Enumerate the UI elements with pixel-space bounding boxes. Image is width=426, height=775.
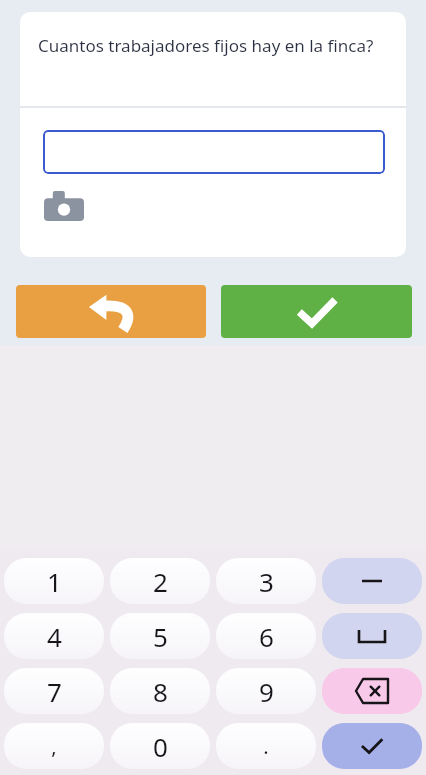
staticText: . xyxy=(263,733,269,760)
button[interactable]: Space xyxy=(322,613,422,659)
button[interactable]: 9 xyxy=(216,668,316,714)
staticText: 2 xyxy=(153,564,168,599)
button[interactable]: Minus xyxy=(322,558,422,604)
staticText: 9 xyxy=(259,674,274,709)
button[interactable]: 6 xyxy=(216,613,316,659)
staticText: 1 xyxy=(47,564,62,599)
staticText: 6 xyxy=(259,619,274,654)
staticText: 7 xyxy=(47,674,62,709)
staticText: 0 xyxy=(153,729,168,764)
button[interactable]: 8 xyxy=(110,668,210,714)
button[interactable]: Back xyxy=(16,285,206,338)
staticText: 5 xyxy=(153,619,168,654)
button[interactable]: 1 xyxy=(4,558,104,604)
staticText: Cuantos trabajadores fijos hay en la fin… xyxy=(38,34,374,57)
button[interactable]: 0 xyxy=(110,723,210,769)
button[interactable]: 5 xyxy=(110,613,210,659)
button[interactable]: . xyxy=(216,723,316,769)
button[interactable]: 2 xyxy=(110,558,210,604)
button[interactable] xyxy=(43,130,385,174)
staticText: 4 xyxy=(47,619,62,654)
button[interactable]: Confirm xyxy=(221,285,412,338)
button[interactable]: 3 xyxy=(216,558,316,604)
button[interactable]: 4 xyxy=(4,613,104,659)
button[interactable]: Take photo xyxy=(42,188,86,224)
button[interactable]: , xyxy=(4,723,104,769)
button[interactable]: Backspace xyxy=(322,668,422,714)
staticText: 3 xyxy=(259,564,274,599)
button[interactable]: Enter xyxy=(322,723,422,769)
button[interactable]: 7 xyxy=(4,668,104,714)
staticText: 8 xyxy=(153,674,168,709)
staticText: , xyxy=(51,733,57,760)
